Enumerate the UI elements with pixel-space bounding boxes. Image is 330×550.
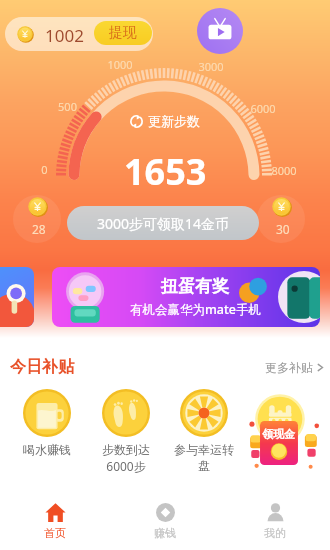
staticText: 3000步可领取14金币 <box>97 214 230 233</box>
staticText: 提现 <box>109 24 137 42</box>
staticText: 参与幸运转 盘 <box>174 442 234 474</box>
staticText: 领现金 <box>262 427 295 441</box>
staticText: 8000 <box>271 163 297 178</box>
staticText: 6000 <box>250 101 276 116</box>
button[interactable]: 30 <box>257 195 305 243</box>
staticText: 更多补贴 <box>265 360 313 375</box>
button[interactable]: 参与幸运转 盘 <box>164 388 244 474</box>
staticText: 有机会赢华为mate手机 <box>130 301 261 318</box>
staticText: 我的 <box>264 526 286 540</box>
staticText: 1002 <box>45 24 84 47</box>
staticText: 扭蛋有奖 <box>161 276 229 297</box>
staticText: 500 <box>58 99 77 114</box>
button[interactable]: 视频 <box>197 8 243 54</box>
button[interactable]: 我的 <box>220 492 330 550</box>
staticText: 1000 <box>107 57 133 72</box>
button[interactable]: 1002 <box>5 17 153 51</box>
staticText: 0 <box>41 162 48 177</box>
staticText: 30 <box>276 221 290 237</box>
button[interactable]: 步数到达 6000步 <box>86 388 166 474</box>
staticText: 步数到达 6000步 <box>102 442 150 474</box>
button[interactable]: 28 <box>13 195 61 243</box>
staticText: 28 <box>32 221 46 237</box>
button[interactable]: 提现 <box>94 21 152 45</box>
staticText: 1653 <box>124 147 207 196</box>
button[interactable]: 上一个活动 <box>0 267 34 327</box>
button[interactable]: 喝水赚钱 <box>7 388 87 457</box>
button[interactable]: 扭蛋有奖 <box>52 267 320 327</box>
button[interactable]: 赚钱 <box>110 492 220 550</box>
button[interactable]: 更新步数 <box>130 113 200 129</box>
staticText: 3000 <box>198 59 224 74</box>
button[interactable]: 3000步可领取14金币 <box>67 206 259 240</box>
staticText: 赚钱 <box>154 526 176 540</box>
button[interactable]: 领现金 <box>248 385 320 471</box>
staticText: 今日补贴 <box>10 357 74 377</box>
staticText: 更新步数 <box>148 113 200 129</box>
button[interactable]: 首页 <box>0 492 110 550</box>
button[interactable]: 更多补贴 <box>265 360 325 375</box>
staticText: 首页 <box>44 526 66 540</box>
staticText: 喝水赚钱 <box>23 442 71 457</box>
